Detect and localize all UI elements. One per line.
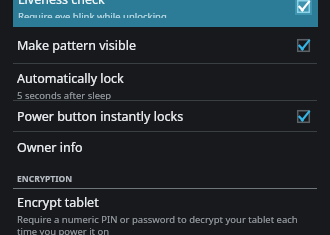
button[interactable]: Power button instantly locks [0,101,330,131]
staticText: Automatically lock [17,70,124,87]
staticText: 5 seconds after sleep [17,89,112,100]
staticText: Require eye blink while unlocking [18,10,167,18]
staticText: Require a numeric PIN or password to dec… [17,213,314,235]
staticText: Liveness check [18,0,105,8]
staticText: ENCRYPTION [17,173,73,185]
button[interactable]: Liveness check [0,0,330,27]
button[interactable]: Make pattern visible [0,32,330,59]
staticText: Make pattern visible [17,37,136,54]
staticText: Power button instantly locks [17,108,184,125]
staticText: Encrypt tablet [17,194,99,211]
staticText: Owner info [17,139,83,156]
button[interactable]: Encrypt tablet [0,189,330,235]
button[interactable]: Owner info [0,132,330,162]
button[interactable]: Automatically lock [0,64,330,100]
